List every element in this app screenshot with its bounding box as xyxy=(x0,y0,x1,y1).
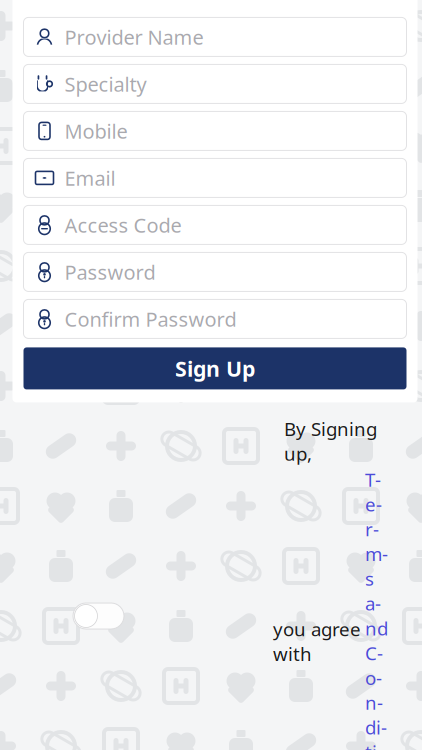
staticText: Mobile xyxy=(64,118,127,144)
button[interactable]: Sign Up xyxy=(23,347,406,389)
staticText: Email xyxy=(64,165,115,191)
button[interactable]: Confirm Password xyxy=(23,299,406,338)
staticText: Password xyxy=(64,259,155,285)
button[interactable]: Provider Name xyxy=(23,17,406,56)
staticText: Access Code xyxy=(64,212,181,238)
button[interactable]: Agree to terms xyxy=(73,603,124,629)
button[interactable]: Specialty xyxy=(23,64,406,103)
staticText: Provider Name xyxy=(64,24,203,50)
button[interactable]: Email xyxy=(23,158,406,197)
button[interactable]: Terms and Conditions xyxy=(365,467,388,750)
staticText: Specialty xyxy=(64,71,146,97)
staticText: By Signing up, xyxy=(284,416,377,466)
staticText: you agree with xyxy=(273,616,361,666)
staticText: Sign Up xyxy=(175,354,255,383)
staticText: Confirm Password xyxy=(64,306,236,332)
staticText: Terms and Conditions xyxy=(365,467,388,750)
button[interactable]: Mobile xyxy=(23,111,406,150)
button[interactable]: Password xyxy=(23,252,406,291)
button[interactable]: Access Code xyxy=(23,205,406,244)
